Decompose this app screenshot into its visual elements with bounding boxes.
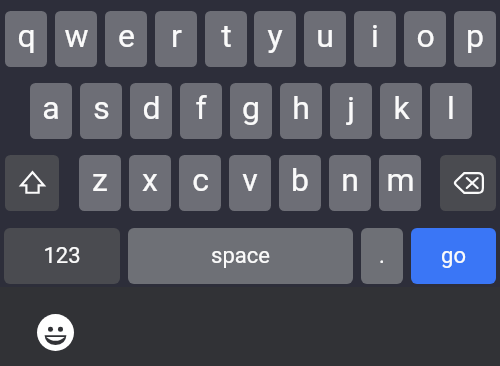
button[interactable]: l — [430, 83, 472, 139]
staticText: go — [441, 243, 466, 269]
staticText: p — [466, 17, 484, 55]
button[interactable]: s — [80, 83, 122, 139]
button[interactable]: go — [411, 228, 496, 284]
button[interactable]: w — [55, 11, 97, 67]
staticText: k — [393, 89, 410, 127]
staticText: m — [386, 161, 415, 199]
button[interactable]: e — [105, 11, 147, 67]
staticText: 123 — [43, 243, 81, 269]
button[interactable]: . — [361, 228, 403, 284]
staticText: e — [118, 17, 135, 55]
staticText: . — [379, 243, 385, 269]
button[interactable]: i — [354, 11, 396, 67]
button[interactable]: b — [279, 155, 321, 211]
staticText: h — [292, 89, 310, 127]
staticText: f — [195, 89, 207, 127]
button[interactable]: n — [329, 155, 371, 211]
staticText: t — [221, 17, 232, 55]
button[interactable]: q — [5, 11, 47, 67]
button[interactable]: v — [229, 155, 271, 211]
button[interactable]: u — [304, 11, 346, 67]
button[interactable]: p — [454, 11, 496, 67]
staticText: q — [17, 17, 36, 55]
staticText: y — [267, 17, 283, 55]
staticText: z — [92, 161, 108, 199]
button[interactable]: Emoji — [37, 314, 74, 351]
button[interactable]: h — [280, 83, 322, 139]
button[interactable]: j — [330, 83, 372, 139]
button[interactable]: space — [128, 228, 353, 284]
button[interactable]: c — [179, 155, 221, 211]
button[interactable]: k — [380, 83, 422, 139]
staticText: a — [42, 89, 60, 127]
staticText: r — [171, 17, 182, 55]
button[interactable]: r — [155, 11, 197, 67]
staticText: x — [142, 161, 158, 199]
staticText: g — [242, 89, 260, 127]
staticText: n — [341, 161, 359, 199]
staticText: u — [316, 17, 334, 55]
button[interactable]: f — [180, 83, 222, 139]
button[interactable]: o — [404, 11, 446, 67]
staticText: d — [142, 89, 161, 127]
staticText: c — [192, 161, 209, 199]
staticText: j — [347, 89, 355, 127]
staticText: w — [64, 17, 89, 55]
button[interactable]: x — [129, 155, 171, 211]
button[interactable]: Shift — [5, 155, 59, 211]
button[interactable]: Backspace — [440, 155, 496, 211]
staticText: s — [93, 89, 110, 127]
button[interactable]: a — [30, 83, 72, 139]
button[interactable]: t — [205, 11, 247, 67]
button[interactable]: m — [379, 155, 421, 211]
button[interactable]: g — [230, 83, 272, 139]
staticText: v — [242, 161, 258, 199]
button[interactable]: d — [130, 83, 172, 139]
button[interactable]: z — [79, 155, 121, 211]
staticText: l — [447, 89, 455, 127]
staticText: o — [416, 17, 435, 55]
staticText: b — [291, 161, 309, 199]
staticText: space — [211, 243, 270, 269]
staticText: i — [371, 17, 379, 55]
button[interactable]: y — [254, 11, 296, 67]
button[interactable]: 123 — [4, 228, 120, 284]
